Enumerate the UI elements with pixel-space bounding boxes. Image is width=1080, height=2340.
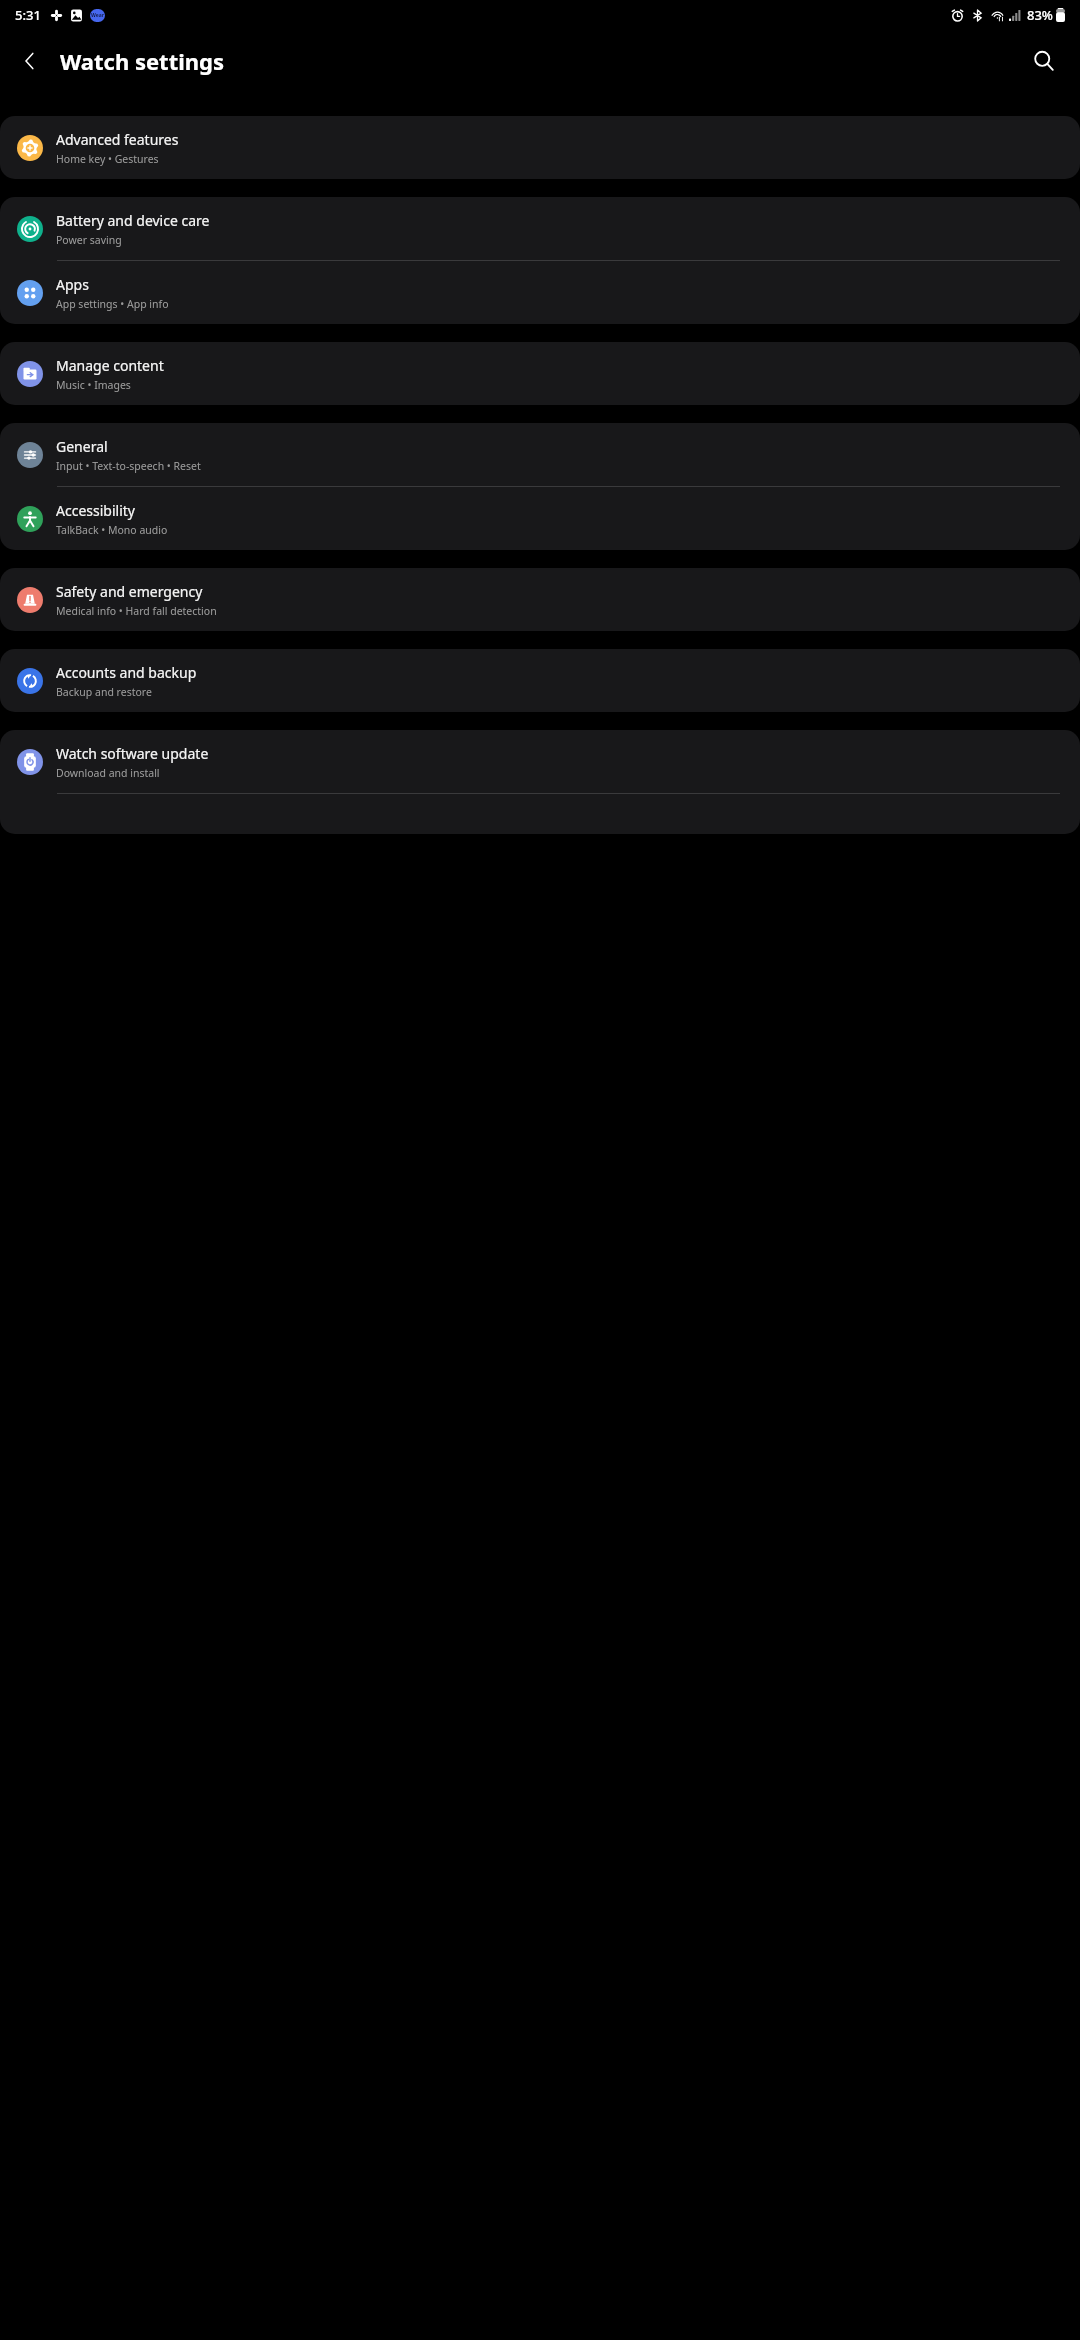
- staticText: Power saving: [56, 233, 122, 247]
- staticText: Backup and restore: [56, 685, 152, 699]
- button[interactable]: Safety and emergency: [0, 568, 1080, 631]
- staticText: Safety and emergency: [56, 582, 203, 601]
- staticText: Input • Text-to-speech • Reset: [56, 459, 201, 473]
- staticText: TalkBack • Mono audio: [56, 523, 168, 537]
- button[interactable]: Advanced features: [0, 116, 1080, 179]
- staticText: App settings • App info: [56, 297, 169, 311]
- button[interactable]: Manage content: [0, 342, 1080, 405]
- staticText: Apps: [56, 275, 89, 294]
- staticText: Accounts and backup: [56, 663, 197, 682]
- button[interactable]: General: [0, 423, 1080, 486]
- button[interactable]: Accounts and backup: [0, 649, 1080, 712]
- staticText: Watch software update: [56, 744, 209, 763]
- button[interactable]: Battery and device care: [0, 197, 1080, 260]
- staticText: Accessibility: [56, 501, 135, 520]
- button[interactable]: Back: [8, 39, 52, 83]
- staticText: Watch settings: [60, 46, 225, 76]
- staticText: Manage content: [56, 356, 164, 375]
- staticText: Wear: [91, 12, 104, 19]
- staticText: Music • Images: [56, 378, 131, 392]
- staticText: General: [56, 437, 108, 456]
- staticText: Battery and device care: [56, 211, 210, 230]
- button[interactable]: Watch software update: [0, 730, 1080, 793]
- staticText: Download and install: [56, 766, 160, 780]
- button[interactable]: Accessibility: [0, 487, 1080, 550]
- staticText: 5:31: [15, 6, 41, 24]
- staticText: Advanced features: [56, 130, 179, 149]
- staticText: 83%: [1027, 6, 1053, 24]
- button[interactable]: Search: [1022, 39, 1066, 83]
- staticText: Home key • Gestures: [56, 152, 159, 166]
- button[interactable]: Apps: [0, 261, 1080, 324]
- staticText: Medical info • Hard fall detection: [56, 604, 217, 618]
